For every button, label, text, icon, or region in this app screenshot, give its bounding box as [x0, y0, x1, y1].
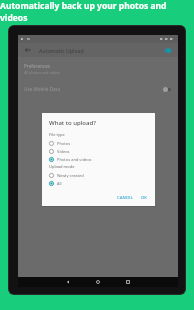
button[interactable]: Automatic upload toggle	[162, 46, 173, 54]
staticText: Automatic Upload	[39, 47, 84, 54]
button[interactable]: All	[49, 179, 150, 187]
staticText: What to upload?	[49, 119, 96, 127]
staticText: All	[57, 181, 62, 186]
staticText: Use Mobile Data	[24, 86, 61, 92]
staticText: Photos and videos	[57, 157, 92, 162]
button[interactable]: Photos and videos	[49, 155, 150, 163]
staticText: CANCEL	[117, 195, 133, 201]
button[interactable]: Home	[91, 277, 105, 287]
button[interactable]: Back	[61, 277, 75, 287]
button[interactable]: Use Mobile Data	[18, 83, 178, 95]
button[interactable]: CANCEL	[114, 193, 136, 203]
button[interactable]: Preferences	[18, 62, 178, 76]
staticText: File type	[49, 132, 65, 137]
staticText: Upload mode	[49, 164, 75, 169]
button[interactable]: Videos	[49, 147, 150, 155]
staticText: Videos	[57, 149, 70, 154]
staticText: Automatically back up your photos and vi…	[0, 0, 194, 22]
staticText: Preferences	[24, 63, 51, 69]
staticText: Photos	[57, 141, 71, 146]
staticText: All photos and videos	[24, 70, 61, 75]
button[interactable]: Photos	[49, 139, 150, 147]
button[interactable]: Back	[23, 45, 33, 55]
button[interactable]: Newly created	[49, 171, 150, 179]
staticText: Newly created	[57, 173, 84, 178]
staticText: OK	[141, 195, 147, 201]
button[interactable]: OK	[138, 193, 150, 203]
button[interactable]: Recent apps	[121, 277, 135, 287]
